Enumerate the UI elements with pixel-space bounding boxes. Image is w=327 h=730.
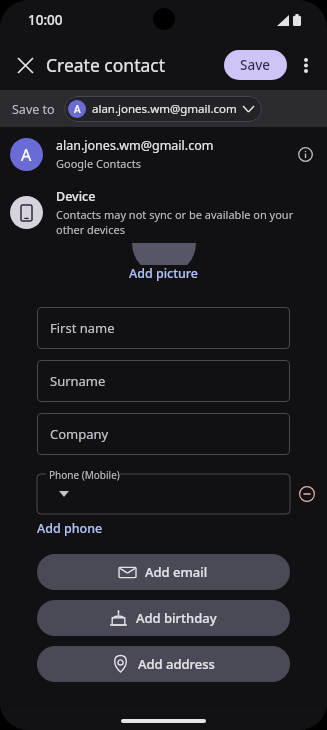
- button[interactable]: Close: [8, 48, 42, 82]
- button[interactable]: A: [64, 96, 262, 122]
- staticText: Create contact: [46, 53, 166, 77]
- button[interactable]: A: [0, 127, 327, 181]
- staticText: Add email: [145, 563, 208, 581]
- button[interactable]: Remove phone: [295, 482, 319, 506]
- staticText: A: [74, 102, 81, 116]
- staticText: Save: [240, 56, 271, 74]
- button[interactable]: Device: [0, 181, 327, 243]
- button[interactable]: Save: [224, 50, 287, 80]
- button[interactable]: Surname: [37, 360, 290, 402]
- staticText: Device: [56, 188, 96, 205]
- button[interactable]: Add picture: [129, 265, 199, 282]
- staticText: 10:00: [28, 11, 63, 29]
- button[interactable]: Info: [287, 136, 323, 172]
- button[interactable]: Add address: [37, 646, 290, 682]
- staticText: Contacts may not sync or be available on…: [56, 207, 305, 237]
- staticText: Add address: [138, 655, 215, 673]
- button[interactable]: Phone (Mobile): [37, 468, 290, 514]
- button[interactable]: Company: [37, 413, 290, 455]
- staticText: A: [21, 144, 32, 166]
- staticText: alan.jones.wm@gmail.com: [56, 137, 214, 154]
- button[interactable]: Add phone: [37, 520, 103, 537]
- staticText: Add birthday: [136, 609, 217, 627]
- staticText: Company: [50, 425, 109, 443]
- staticText: Save to: [12, 101, 55, 118]
- staticText: Phone (Mobile): [49, 468, 120, 482]
- button[interactable]: Add birthday: [37, 600, 290, 636]
- staticText: First name: [50, 319, 115, 337]
- button[interactable]: First name: [37, 307, 290, 349]
- staticText: Google Contacts: [56, 156, 142, 171]
- button[interactable]: More options: [289, 48, 323, 82]
- staticText: alan.jones.wm@gmail.com: [92, 101, 237, 117]
- staticText: Surname: [50, 372, 106, 390]
- button[interactable]: Add email: [37, 554, 290, 590]
